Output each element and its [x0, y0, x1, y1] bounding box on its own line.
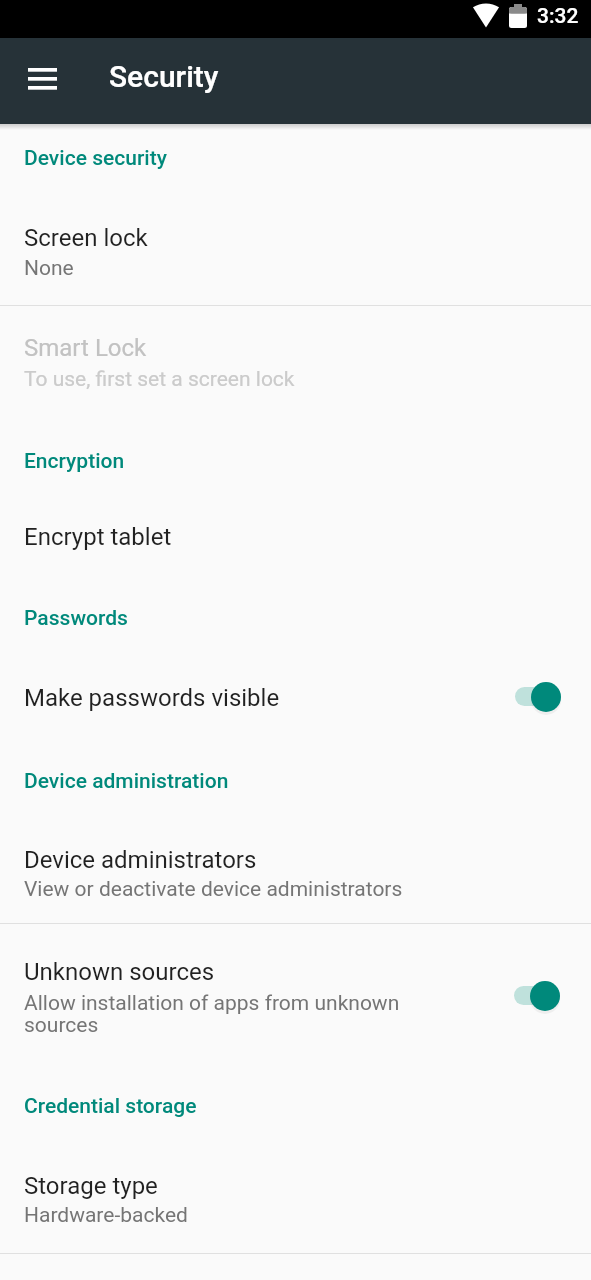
- button[interactable]: Unknown sources: [0, 924, 591, 1055]
- staticText: None: [24, 256, 74, 281]
- staticText: Make passwords visible: [24, 684, 280, 712]
- staticText: Encryption: [24, 449, 125, 474]
- staticText: View or deactivate device administrators: [24, 877, 403, 902]
- button[interactable]: Screen lock: [0, 198, 591, 305]
- staticText: Storage type: [24, 1172, 158, 1200]
- staticText: Device security: [24, 146, 167, 171]
- staticText: Unknown sources: [24, 958, 215, 986]
- staticText: Credential storage: [24, 1094, 197, 1119]
- staticText: sources: [24, 1013, 99, 1038]
- staticText: Screen lock: [24, 224, 148, 252]
- staticText: Device administrators: [24, 846, 257, 874]
- staticText: Passwords: [24, 606, 128, 631]
- staticText: Allow installation of apps from unknown: [24, 991, 400, 1016]
- staticText: Encrypt tablet: [24, 523, 172, 551]
- button[interactable]: Smart Lock: [0, 306, 591, 422]
- staticText: Device administration: [24, 769, 229, 794]
- button[interactable]: [18, 55, 66, 103]
- staticText: Hardware-backed: [24, 1203, 188, 1228]
- button[interactable]: Make passwords visible: [0, 652, 591, 744]
- staticText: To use, first set a screen lock: [24, 367, 295, 392]
- button[interactable]: Encrypt tablet: [0, 495, 591, 585]
- button[interactable]: Storage type: [0, 1145, 591, 1253]
- staticText: Smart Lock: [24, 334, 147, 362]
- staticText: 3:32: [537, 4, 579, 29]
- button[interactable]: Device administrators: [0, 816, 591, 923]
- staticText: Security: [109, 59, 219, 94]
